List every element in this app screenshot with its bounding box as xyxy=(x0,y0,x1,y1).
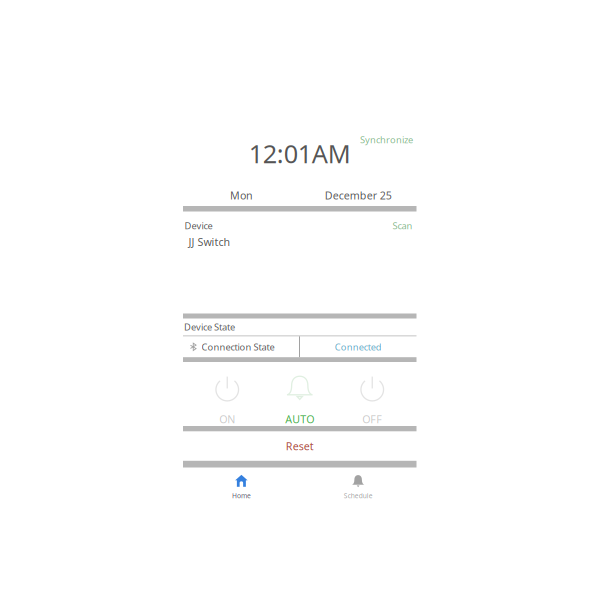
staticText: Connection State xyxy=(201,341,274,353)
button[interactable]: OFF xyxy=(336,362,408,426)
staticText: Connected xyxy=(335,341,382,353)
staticText: OFF xyxy=(362,412,382,426)
button[interactable]: Synchronize xyxy=(360,133,416,146)
staticText: Schedule xyxy=(344,491,373,500)
staticText: Reset xyxy=(286,439,314,453)
button[interactable]: ON xyxy=(191,362,263,426)
staticText: December 25 xyxy=(325,188,392,202)
button[interactable]: Schedule xyxy=(300,467,417,499)
staticText: JJ Switch xyxy=(188,235,230,249)
staticText: 12:01AM xyxy=(249,136,351,170)
button[interactable]: AUTO xyxy=(263,362,336,426)
staticText: Device xyxy=(184,219,212,232)
staticText: Device State xyxy=(184,321,235,333)
staticText: Home xyxy=(232,491,251,500)
staticText: AUTO xyxy=(285,412,314,426)
staticText: Synchronize xyxy=(360,133,413,146)
button[interactable]: Scan xyxy=(392,219,412,232)
staticText: Mon xyxy=(230,188,253,202)
staticText: Scan xyxy=(392,219,412,232)
button[interactable]: JJ Switch xyxy=(183,232,416,249)
button[interactable]: Home xyxy=(183,467,300,499)
staticText: ON xyxy=(219,412,235,426)
button[interactable]: Reset xyxy=(183,431,416,461)
